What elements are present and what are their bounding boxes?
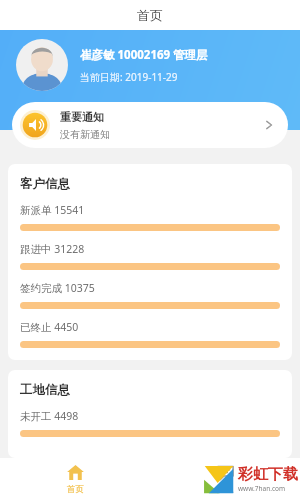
staticText: 首页 [137,7,163,23]
staticText: 跟进中 31228 [20,242,85,256]
staticText: 没有新通知 [60,128,110,141]
button[interactable]: 首页 [0,458,150,500]
staticText: 工地信息 [20,382,70,398]
staticText: 重要通知 [60,110,104,124]
staticText: 消息 [217,484,234,495]
staticText: 已终止 4450 [20,320,79,334]
staticText: 签约完成 10375 [20,281,95,295]
staticText: 当前日期: 2019-11-29 [80,70,178,84]
button[interactable]: 消息 [150,458,300,500]
staticText: www.7han.com [238,484,286,493]
staticText: 新派单 15541 [20,203,85,217]
staticText: 客户信息 [20,176,70,192]
button[interactable]: 重要通知 [12,102,288,148]
staticText: 彩虹下载 [238,465,298,484]
staticText: 未开工 4498 [20,409,79,423]
staticText: 首页 [67,484,84,495]
staticText: 崔彦敏 10002169 管理层 [80,47,208,63]
